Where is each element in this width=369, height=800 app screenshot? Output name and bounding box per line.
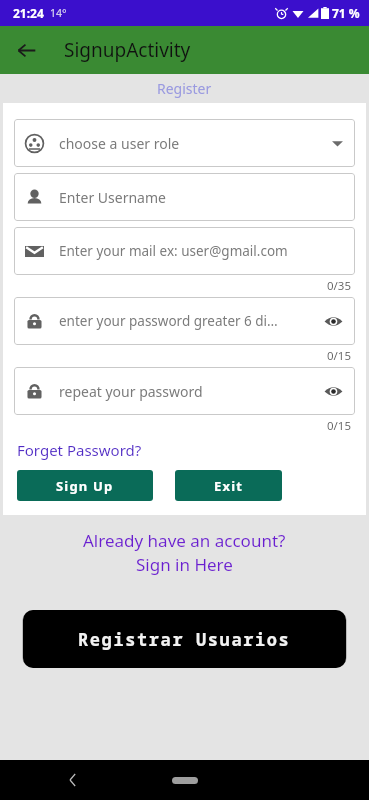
staticText: Enter Username bbox=[59, 188, 166, 207]
button[interactable]: Toggle password visibility bbox=[322, 310, 344, 332]
button[interactable]: Toggle password visibility bbox=[322, 380, 344, 402]
staticText: 71 % bbox=[332, 5, 360, 21]
staticText: SignupActivity bbox=[64, 37, 191, 63]
staticText: Sign in Here bbox=[136, 553, 233, 576]
button[interactable]: Already have an account? bbox=[0, 529, 369, 576]
staticText: 0/15 bbox=[327, 348, 352, 364]
button[interactable]: Enter your mail ex: user@gmail.com bbox=[14, 227, 355, 275]
button[interactable]: choose a user role bbox=[14, 119, 355, 167]
staticText: 21:24 bbox=[13, 5, 44, 21]
staticText: Forget Password? bbox=[17, 440, 142, 460]
staticText: Already have an account? bbox=[83, 529, 286, 552]
staticText: 14° bbox=[50, 6, 67, 20]
button[interactable]: Home bbox=[172, 777, 198, 784]
button[interactable]: Enter Username bbox=[14, 173, 355, 221]
staticText: 0/35 bbox=[327, 278, 352, 294]
staticText: Exit bbox=[214, 477, 244, 495]
button[interactable]: Exit bbox=[175, 470, 282, 501]
button[interactable]: Forget Password? bbox=[17, 438, 142, 462]
staticText: Register bbox=[157, 79, 212, 98]
staticText: repeat your password bbox=[59, 382, 203, 401]
staticText: Registrar Usuarios bbox=[78, 628, 291, 651]
staticText: enter your password greater 6 di… bbox=[59, 312, 278, 330]
staticText: choose a user role bbox=[59, 134, 180, 153]
staticText: 0/15 bbox=[327, 418, 352, 434]
button[interactable]: enter your password greater 6 di… bbox=[14, 297, 355, 345]
button[interactable]: Sign Up bbox=[17, 470, 153, 501]
button[interactable]: Back bbox=[58, 765, 88, 795]
button[interactable]: Back bbox=[8, 32, 44, 68]
button[interactable]: repeat your password bbox=[14, 367, 355, 415]
staticText: Enter your mail ex: user@gmail.com bbox=[59, 242, 288, 260]
staticText: Sign Up bbox=[56, 477, 114, 495]
